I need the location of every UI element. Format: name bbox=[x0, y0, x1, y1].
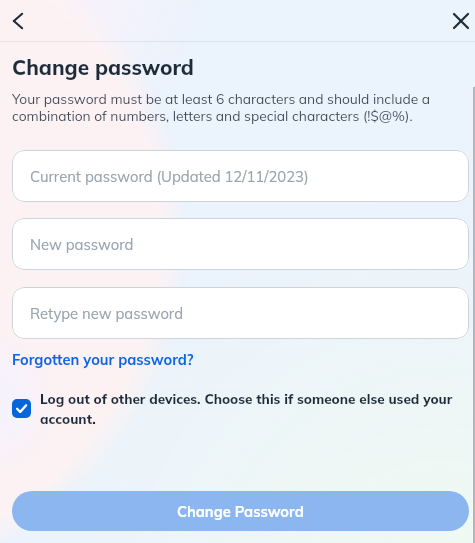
staticText: Retype new password bbox=[30, 304, 184, 323]
staticText: Change Password bbox=[177, 502, 304, 520]
staticText: New password bbox=[30, 235, 134, 254]
staticText: Current password (Updated 12/11/2023) bbox=[30, 167, 309, 186]
button[interactable]: Log out of other devices. Choose this if… bbox=[12, 390, 469, 427]
staticText: Your password must be at least 6 charact… bbox=[12, 90, 469, 125]
staticText: Change password bbox=[12, 54, 194, 80]
button[interactable]: Current password (Updated 12/11/2023) bbox=[12, 150, 469, 202]
button[interactable]: Retype new password bbox=[12, 287, 469, 339]
button[interactable]: Back bbox=[0, 0, 38, 41]
staticText: Forgotten your password? bbox=[12, 350, 194, 368]
button[interactable]: New password bbox=[12, 218, 469, 270]
button[interactable]: Close bbox=[440, 0, 475, 41]
button[interactable]: Change Password bbox=[12, 491, 469, 531]
button[interactable]: Forgotten your password? bbox=[12, 350, 194, 368]
staticText: Log out of other devices. Choose this if… bbox=[40, 390, 469, 427]
